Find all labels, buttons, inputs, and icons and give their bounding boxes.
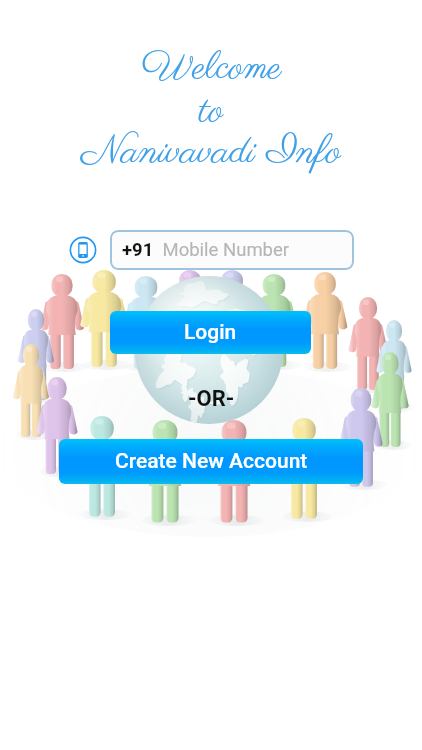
button[interactable]: +91 Mobile Number: [110, 230, 354, 270]
staticText: Login: [184, 320, 237, 345]
staticText: +91 Mobile Number: [122, 239, 290, 261]
staticText: Create New Account: [115, 449, 308, 474]
staticText: Nanivavadi Info: [81, 125, 341, 179]
staticText: -OR-: [188, 386, 235, 412]
button[interactable]: Create New Account: [59, 439, 363, 484]
staticText: to: [199, 86, 223, 138]
staticText: Welcome: [141, 43, 282, 95]
button[interactable]: Login: [110, 311, 311, 354]
button[interactable]: Phone number: [69, 236, 97, 264]
